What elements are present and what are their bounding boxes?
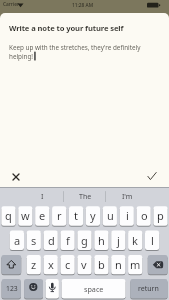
staticText: o <box>141 208 148 223</box>
staticText: return <box>138 284 159 294</box>
staticText: I <box>41 192 44 202</box>
staticText: x <box>48 257 54 272</box>
staticText: p <box>157 208 164 223</box>
staticText: w <box>21 208 30 223</box>
staticText: space <box>84 284 104 294</box>
staticText: r <box>57 208 62 223</box>
staticText: l <box>151 233 154 248</box>
staticText: k <box>132 233 138 248</box>
staticText: n <box>115 257 122 272</box>
staticText: a <box>14 233 21 248</box>
staticText: u <box>107 208 114 223</box>
staticText: c <box>65 257 71 272</box>
staticText: Write a note to your future self <box>9 23 124 33</box>
staticText: z <box>31 257 37 272</box>
staticText: 11:28 AM <box>72 2 94 9</box>
staticText: y <box>90 208 96 223</box>
staticText: h <box>98 233 105 248</box>
staticText: 123 <box>6 284 18 293</box>
staticText: s <box>31 233 37 248</box>
staticText: helping! <box>9 52 34 61</box>
staticText: d <box>48 233 55 248</box>
staticText: v <box>81 257 87 272</box>
staticText: I'm <box>122 192 133 202</box>
staticText: e <box>39 208 46 223</box>
staticText: f <box>66 233 70 248</box>
staticText: The <box>79 192 92 202</box>
staticText: t <box>74 208 78 223</box>
staticText: g <box>81 233 88 248</box>
staticText: q <box>5 208 12 223</box>
staticText: m <box>130 257 141 272</box>
staticText: b <box>98 257 105 272</box>
staticText: Keep up with the stretches, they're defi… <box>9 43 141 52</box>
staticText: i <box>126 208 129 223</box>
staticText: Carrier <box>3 1 19 8</box>
staticText: j <box>117 233 120 248</box>
